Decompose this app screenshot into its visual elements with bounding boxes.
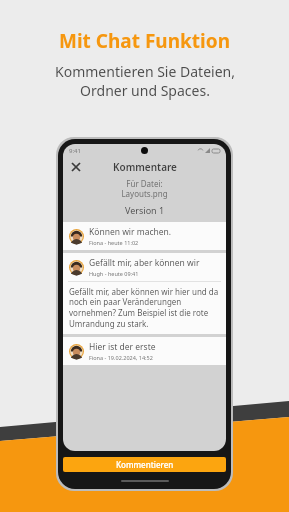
staticText: Version 1 bbox=[125, 204, 165, 216]
staticText: Gefällt mir, aber können wir hier und da… bbox=[69, 286, 220, 330]
staticText: Können wir machen. bbox=[89, 226, 172, 238]
button[interactable]: Schließen bbox=[68, 159, 84, 175]
staticText: Fiona - 19.02.2024, 14:52 bbox=[89, 354, 153, 361]
staticText: Kommentieren bbox=[116, 459, 174, 470]
staticText: Hier ist der erste Konzeptvorschlag. bbox=[89, 341, 220, 353]
staticText: Für Datei: Layouts.png bbox=[121, 178, 168, 199]
staticText: Gefällt mir, aber können wir hie... bbox=[89, 257, 220, 269]
staticText: Mit Chat Funktion bbox=[59, 28, 230, 54]
button[interactable]: Kommentieren bbox=[63, 457, 226, 472]
staticText: Hugh - heute 09:41 bbox=[89, 270, 139, 277]
staticText: Kommentieren Sie Dateien, Ordner und Spa… bbox=[55, 62, 235, 100]
staticText: Kommentare bbox=[113, 160, 177, 174]
button[interactable]: Gefällt mir, aber können wir hie... bbox=[63, 253, 226, 334]
staticText: Fiona - heute 11:02 bbox=[89, 239, 139, 246]
button[interactable]: Hier ist der erste Konzeptvorschlag. bbox=[63, 337, 226, 365]
staticText: 9:41 bbox=[69, 147, 81, 155]
button[interactable]: Können wir machen. bbox=[63, 222, 226, 250]
